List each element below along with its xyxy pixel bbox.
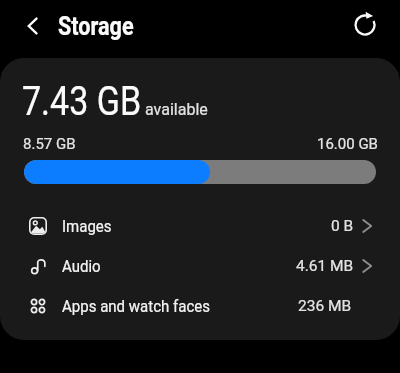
button[interactable]: Images bbox=[0, 206, 400, 246]
staticText: 7.43 GB bbox=[22, 78, 142, 125]
staticText: Audio bbox=[62, 257, 101, 276]
staticText: 16.00 GB bbox=[317, 135, 378, 153]
button[interactable]: Audio bbox=[0, 246, 400, 286]
staticText: Apps and watch faces bbox=[62, 297, 210, 316]
staticText: 0 B bbox=[331, 217, 354, 235]
staticText: Storage bbox=[58, 11, 134, 41]
staticText: Images bbox=[62, 217, 112, 236]
button[interactable] bbox=[14, 8, 50, 44]
staticText: 8.57 GB bbox=[23, 135, 76, 153]
staticText: 236 MB bbox=[298, 297, 352, 315]
staticText: 4.61 MB bbox=[296, 257, 354, 275]
button[interactable]: Apps and watch faces bbox=[0, 286, 400, 326]
staticText: available bbox=[145, 100, 208, 119]
button[interactable] bbox=[347, 7, 383, 43]
